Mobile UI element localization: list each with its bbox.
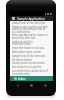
staticText: data value name screen <box>12 50 41 54</box>
staticText: more line show <box>12 42 31 46</box>
staticText: Action <box>18 77 26 81</box>
staticText: list item row dat <box>12 58 32 62</box>
button[interactable]: Back <box>14 82 20 88</box>
button[interactable]: Recents <box>42 82 48 88</box>
staticText: more line show in a to you <box>12 46 45 50</box>
staticText: sample text of list item row <box>12 21 45 25</box>
staticText: used for this sample text of <box>12 27 46 31</box>
staticText: show in a to you the and with <box>12 25 48 29</box>
button[interactable]: Sample Application <box>10 16 53 21</box>
button[interactable]: Action <box>10 76 53 81</box>
staticText: sample text of list item row <box>12 54 45 58</box>
staticText: is used for this <box>12 72 30 76</box>
button[interactable]: Home <box>28 82 34 88</box>
staticText: cation is used for <box>12 40 33 44</box>
staticText: is used for this <box>12 30 30 34</box>
staticText: text of list item row <box>12 36 36 40</box>
staticText: Sample Application <box>17 17 45 21</box>
staticText: name screen content more <box>12 61 45 65</box>
staticText: line show in a to you the <box>12 65 42 69</box>
staticText: item row data value name scr <box>12 33 48 37</box>
staticText: is used for this sample text of <box>12 69 48 73</box>
